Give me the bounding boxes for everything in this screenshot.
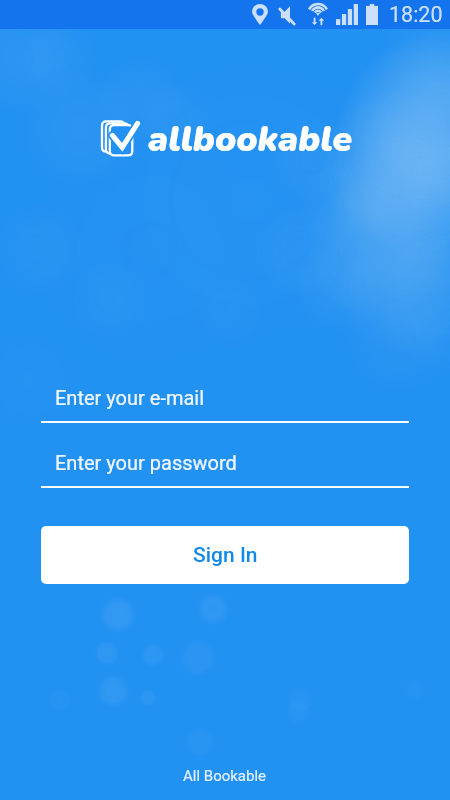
button[interactable]: Sign In xyxy=(41,526,409,584)
staticText: All Bookable xyxy=(183,767,267,785)
other: Wi-Fi xyxy=(307,4,329,26)
other: Battery xyxy=(366,4,378,25)
staticText: Enter your password xyxy=(55,451,237,474)
staticText: Enter your e-mail xyxy=(55,386,205,409)
staticText: Sign In xyxy=(193,543,258,568)
other: Silent mode xyxy=(279,5,298,25)
button[interactable]: Enter your password xyxy=(41,446,409,488)
other: Location xyxy=(252,4,268,25)
other: Signal strength xyxy=(336,4,358,25)
staticText: 18:20 xyxy=(389,2,443,27)
button[interactable]: Enter your e-mail xyxy=(41,381,409,423)
staticText: allbookable xyxy=(148,115,353,163)
